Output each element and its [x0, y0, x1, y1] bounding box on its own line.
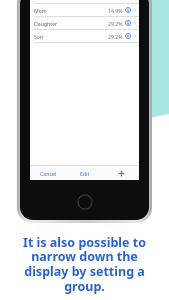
- staticText: 14.9%: [108, 7, 123, 14]
- staticText: Daughter: [34, 20, 58, 27]
- button[interactable]: Cancel: [30, 166, 67, 180]
- button[interactable]: Info: [125, 20, 131, 26]
- staticText: Cancel: [40, 170, 57, 177]
- button[interactable]: Mom: [30, 4, 139, 17]
- button[interactable]: Daughter: [30, 17, 139, 30]
- button[interactable]: Dad: [30, 0, 139, 4]
- staticText: Son: [34, 33, 44, 40]
- button[interactable]: Info: [125, 7, 131, 13]
- staticText: It is also possible to narrow down the d…: [6, 234, 163, 295]
- button[interactable]: Son: [30, 30, 139, 43]
- button[interactable]: Info: [125, 33, 131, 39]
- button[interactable]: Home: [77, 194, 93, 210]
- staticText: Mom: [34, 7, 47, 14]
- staticText: 29.2%: [108, 33, 123, 40]
- staticText: Edit: [80, 170, 90, 177]
- button[interactable]: Add: [103, 166, 139, 180]
- staticText: 29.2%: [108, 20, 123, 27]
- button[interactable]: Edit: [67, 166, 103, 180]
